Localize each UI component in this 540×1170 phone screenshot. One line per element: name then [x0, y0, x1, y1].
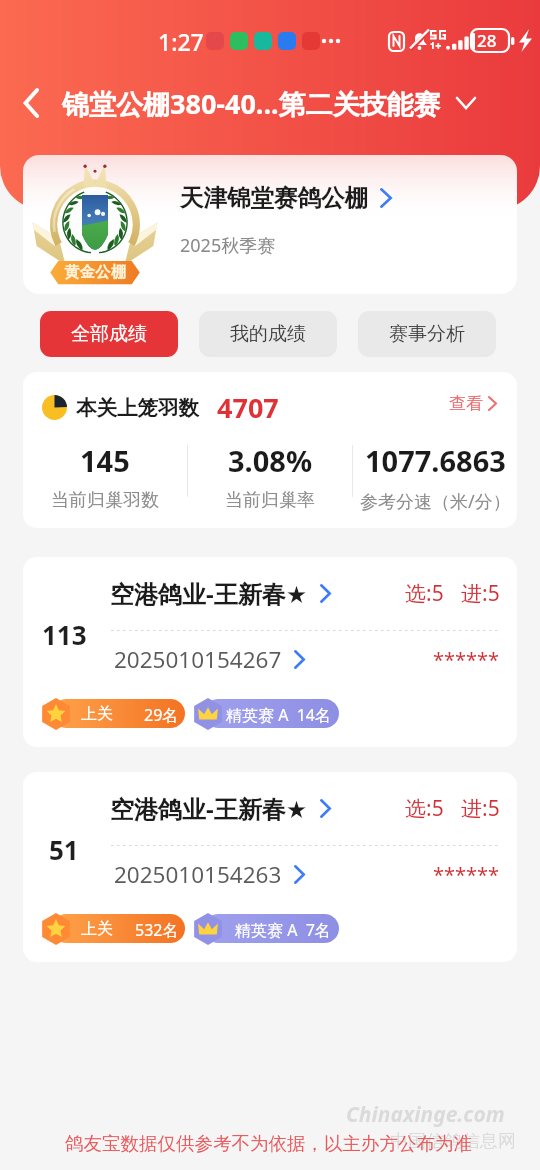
staticText: 参考分速（米/分）: [360, 489, 511, 514]
staticText: 锦堂公棚380-40...第二关技能赛: [62, 85, 441, 122]
staticText: 2025秋季赛: [180, 233, 276, 258]
staticText: 29名: [144, 704, 179, 726]
staticText: 当前归巢羽数: [51, 489, 159, 512]
staticText: 我的成绩: [230, 322, 306, 346]
staticText: 鸽友宝数据仅供参考不为依据，以主办方公布为准: [65, 1132, 472, 1155]
staticText: ******: [433, 646, 500, 673]
staticText: 28: [477, 29, 497, 52]
staticText: 全部成绩: [71, 322, 147, 346]
staticText: 3.08%: [228, 441, 313, 480]
staticText: 黄金公棚: [64, 263, 126, 282]
staticText: 进:5: [461, 579, 500, 608]
staticText: 4707: [217, 389, 279, 426]
button[interactable]: 精英赛 A 7名: [192, 912, 339, 945]
staticText: 空港鸽业-王新春★: [110, 577, 308, 610]
staticText: 进:5: [461, 794, 500, 823]
button[interactable]: 上关: [40, 912, 185, 945]
button[interactable]: 黄金公棚: [23, 155, 517, 294]
staticText: 145: [80, 441, 130, 480]
staticText: 1077.6863: [365, 441, 506, 480]
button[interactable]: 查看: [449, 393, 497, 414]
staticText: 1:27: [158, 26, 204, 57]
staticText: 精英赛 A 7名: [235, 919, 331, 941]
staticText: 中国信鸽信息网: [390, 1130, 516, 1153]
button[interactable]: 赛事分析: [358, 311, 496, 357]
staticText: 精英赛 A 14名: [226, 704, 331, 726]
button[interactable]: 上关: [40, 697, 185, 730]
staticText: 上关: [81, 704, 113, 724]
button[interactable]: 51: [23, 772, 517, 962]
staticText: 2025010154263: [114, 859, 282, 890]
staticText: 天津锦堂赛鸽公棚: [180, 183, 368, 213]
staticText: 选:5: [405, 794, 444, 823]
staticText: 113: [42, 617, 87, 652]
staticText: Chinaxinge.com: [346, 1100, 505, 1129]
staticText: 上关: [81, 919, 113, 939]
staticText: 本关上笼羽数: [76, 395, 199, 421]
staticText: 选:5: [405, 579, 444, 608]
button[interactable]: 113: [23, 557, 517, 747]
staticText: 当前归巢率: [225, 489, 315, 512]
button[interactable]: 精英赛 A 14名: [192, 697, 339, 730]
button[interactable]: 全部成绩: [40, 311, 178, 357]
staticText: 2025010154267: [114, 644, 282, 675]
button[interactable]: 我的成绩: [199, 311, 337, 357]
staticText: 532名: [135, 919, 179, 941]
staticText: 空港鸽业-王新春★: [110, 792, 308, 825]
button[interactable]: Back: [0, 70, 62, 136]
button[interactable]: Switch race: [453, 90, 479, 116]
staticText: 51: [49, 832, 79, 867]
staticText: 赛事分析: [389, 322, 465, 346]
staticText: ******: [433, 861, 500, 888]
staticText: 查看: [449, 393, 483, 414]
